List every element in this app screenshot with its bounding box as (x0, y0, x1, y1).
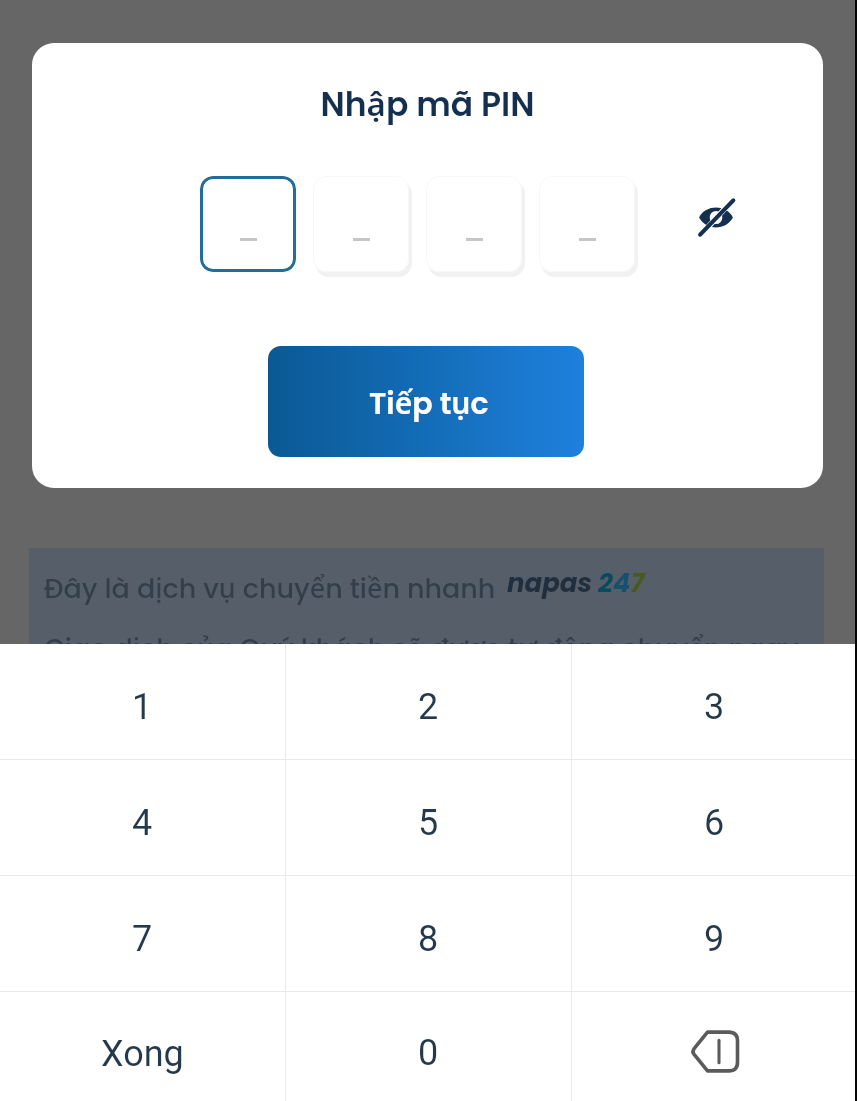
button[interactable] (426, 176, 522, 272)
staticText: 1 (132, 686, 153, 728)
button[interactable]: 8 (286, 876, 571, 991)
staticText: 7 (132, 918, 153, 960)
staticText: 9 (704, 918, 725, 960)
staticText: 4 (132, 802, 153, 844)
staticText: Đây là dịch vụ chuyển tiền nhanh (44, 569, 503, 607)
button[interactable] (539, 176, 635, 272)
button[interactable]: Hiện mã PIN (691, 192, 741, 242)
button[interactable]: 5 (286, 760, 571, 875)
button[interactable]: Tiếp tục (268, 346, 584, 457)
button[interactable]: 1 (0, 644, 285, 759)
staticText: napas 247 (507, 565, 645, 601)
staticText: Nhập mã PIN (32, 81, 823, 128)
staticText: Tiếp tục (369, 382, 489, 425)
button[interactable]: Xong (0, 992, 285, 1101)
staticText: 3 (704, 686, 725, 728)
button[interactable]: 3 (572, 644, 857, 759)
button[interactable] (313, 176, 409, 272)
button[interactable]: 7 (0, 876, 285, 991)
button[interactable]: 2 (286, 644, 571, 759)
button[interactable]: 6 (572, 760, 857, 875)
button[interactable] (200, 176, 296, 272)
staticText: 6 (704, 802, 725, 844)
staticText: 8 (418, 918, 439, 960)
button[interactable]: 0 (286, 992, 571, 1101)
button[interactable]: 9 (572, 876, 857, 991)
button[interactable]: 4 (0, 760, 285, 875)
staticText: Xong (101, 1033, 184, 1075)
staticText: Giao dịch của Quý khách sẽ được tự động … (44, 629, 799, 667)
staticText: 0 (418, 1032, 439, 1074)
staticText: 2 (418, 686, 439, 728)
button[interactable]: Xoá (572, 992, 857, 1101)
staticText: 5 (418, 802, 439, 844)
